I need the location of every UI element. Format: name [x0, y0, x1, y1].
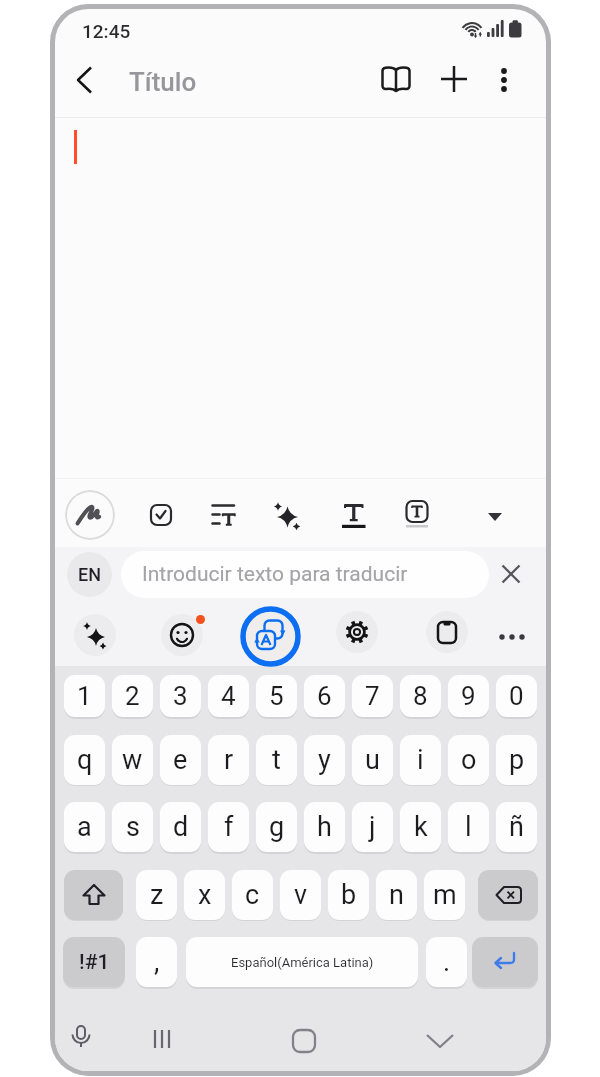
button[interactable]: f — [208, 802, 249, 852]
button[interactable]: Introducir texto para traducir — [121, 551, 489, 598]
button[interactable] — [240, 606, 301, 667]
button[interactable] — [494, 63, 514, 97]
staticText: 3 — [173, 681, 188, 711]
button[interactable]: x — [184, 870, 225, 920]
button[interactable]: v — [280, 870, 321, 920]
button[interactable]: 9 — [448, 675, 489, 717]
button[interactable]: 5 — [256, 675, 297, 717]
staticText: 0 — [509, 681, 524, 711]
staticText: 6 — [317, 681, 332, 711]
button[interactable] — [209, 502, 239, 528]
button[interactable] — [483, 507, 507, 527]
button[interactable]: r — [208, 735, 249, 785]
button[interactable]: q — [64, 735, 105, 785]
button[interactable]: o — [448, 735, 489, 785]
button[interactable] — [336, 611, 378, 653]
button[interactable]: b — [328, 870, 369, 920]
staticText: u — [365, 744, 380, 776]
staticText: 5 — [269, 681, 284, 711]
button[interactable]: m — [424, 870, 465, 920]
button[interactable]: h — [304, 802, 345, 852]
staticText: l — [465, 811, 472, 843]
staticText: Introducir texto para traducir — [142, 562, 408, 587]
staticText: Español(América Latina) — [231, 955, 374, 970]
staticText: f — [224, 811, 234, 843]
button[interactable] — [65, 65, 101, 95]
button[interactable] — [340, 501, 368, 531]
button[interactable] — [65, 490, 115, 540]
staticText: !#1 — [79, 950, 110, 975]
button[interactable] — [472, 937, 538, 987]
button[interactable]: d — [160, 802, 201, 852]
button[interactable] — [379, 65, 413, 93]
staticText: r — [224, 744, 234, 776]
button[interactable]: t — [256, 735, 297, 785]
button[interactable]: EN — [67, 552, 112, 597]
button[interactable]: u — [352, 735, 393, 785]
button[interactable] — [422, 1023, 458, 1059]
button[interactable] — [272, 501, 302, 531]
button[interactable]: n — [376, 870, 417, 920]
staticText: ñ — [509, 811, 524, 843]
staticText: n — [389, 879, 404, 911]
staticText: h — [317, 811, 332, 843]
button[interactable]: 8 — [400, 675, 441, 717]
button[interactable]: !#1 — [63, 937, 125, 987]
staticText: q — [77, 744, 93, 776]
button[interactable]: 4 — [208, 675, 249, 717]
staticText: 9 — [461, 681, 476, 711]
button[interactable] — [63, 1021, 99, 1057]
button[interactable]: l — [448, 802, 489, 852]
button[interactable]: j — [352, 802, 393, 852]
button[interactable]: s — [112, 802, 153, 852]
button[interactable]: z — [136, 870, 177, 920]
staticText: b — [341, 879, 357, 911]
button[interactable] — [64, 870, 123, 920]
staticText: p — [509, 744, 525, 776]
button[interactable]: 1 — [64, 675, 105, 717]
staticText: 8 — [413, 681, 428, 711]
staticText: e — [173, 744, 188, 776]
button[interactable] — [404, 499, 430, 529]
button[interactable] — [496, 559, 526, 589]
staticText: EN — [78, 564, 101, 585]
staticText: 1 — [77, 681, 92, 711]
button[interactable] — [144, 1021, 180, 1057]
staticText: d — [173, 811, 189, 843]
staticText: Título — [129, 67, 197, 97]
button[interactable]: c — [232, 870, 273, 920]
button[interactable] — [74, 614, 116, 656]
button[interactable] — [495, 622, 529, 650]
button[interactable]: p — [496, 735, 537, 785]
button[interactable]: . — [426, 937, 467, 987]
button[interactable]: 6 — [304, 675, 345, 717]
button[interactable]: 3 — [160, 675, 201, 717]
button[interactable]: ñ — [496, 802, 537, 852]
button[interactable] — [478, 870, 538, 920]
staticText: m — [433, 879, 457, 911]
button[interactable]: Español(América Latina) — [186, 937, 418, 987]
button[interactable]: 2 — [112, 675, 153, 717]
button[interactable]: y — [304, 735, 345, 785]
button[interactable] — [440, 65, 468, 93]
button[interactable]: a — [64, 802, 105, 852]
button[interactable]: 7 — [352, 675, 393, 717]
staticText: j — [369, 811, 376, 843]
button[interactable] — [149, 502, 175, 528]
button[interactable]: e — [160, 735, 201, 785]
button[interactable]: k — [400, 802, 441, 852]
staticText: g — [269, 811, 285, 843]
button[interactable] — [161, 614, 203, 656]
button[interactable]: g — [256, 802, 297, 852]
staticText: 4 — [221, 681, 236, 711]
button[interactable] — [426, 611, 468, 653]
button[interactable] — [286, 1023, 322, 1059]
staticText: c — [245, 879, 260, 911]
button[interactable]: 0 — [496, 675, 537, 717]
staticText: v — [294, 879, 308, 911]
button[interactable]: , — [136, 937, 177, 987]
staticText: i — [417, 744, 424, 776]
button[interactable]: i — [400, 735, 441, 785]
staticText: y — [318, 744, 331, 776]
button[interactable]: w — [112, 735, 153, 785]
